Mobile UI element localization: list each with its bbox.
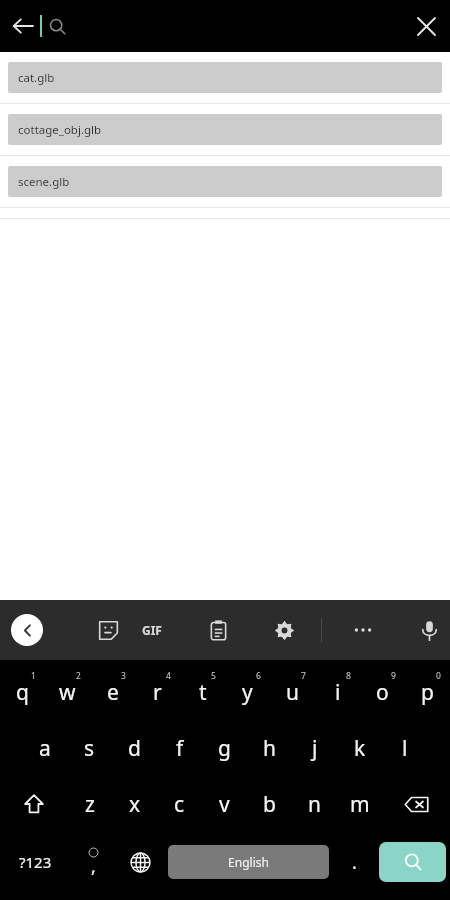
staticText: x bbox=[129, 790, 141, 819]
button[interactable]: scene.glb bbox=[0, 166, 450, 218]
button[interactable]: l bbox=[382, 720, 427, 776]
staticText: z bbox=[85, 790, 95, 819]
staticText: scene.glb bbox=[18, 174, 70, 190]
staticText: d bbox=[128, 734, 141, 763]
button[interactable]: n bbox=[292, 776, 337, 832]
button[interactable]: Back bbox=[11, 614, 43, 646]
staticText: p bbox=[421, 678, 434, 707]
staticText: 3 bbox=[121, 670, 126, 682]
button[interactable]: b bbox=[247, 776, 292, 832]
button[interactable]: i bbox=[315, 664, 360, 720]
button[interactable]: Back bbox=[0, 3, 46, 49]
button[interactable]: GIF bbox=[130, 608, 174, 652]
button[interactable]: cottage_obj.glb bbox=[0, 114, 450, 166]
staticText: e bbox=[107, 678, 119, 707]
staticText: . bbox=[352, 850, 357, 875]
button[interactable]: p bbox=[405, 664, 450, 720]
staticText: 4 bbox=[166, 670, 171, 682]
staticText: 7 bbox=[301, 670, 306, 682]
staticText: English bbox=[228, 854, 269, 870]
button[interactable]: , bbox=[70, 832, 117, 892]
staticText: b bbox=[263, 790, 276, 819]
button[interactable]: Voice input bbox=[407, 608, 450, 652]
button[interactable]: Stickers bbox=[86, 608, 130, 652]
button[interactable]: x bbox=[112, 776, 157, 832]
button[interactable]: z bbox=[67, 776, 112, 832]
staticText: , bbox=[91, 854, 96, 879]
staticText: j bbox=[312, 734, 318, 763]
button[interactable]: h bbox=[247, 720, 292, 776]
button[interactable]: s bbox=[67, 720, 112, 776]
button[interactable]: j bbox=[292, 720, 337, 776]
button[interactable]: u bbox=[270, 664, 315, 720]
staticText: l bbox=[402, 734, 408, 763]
staticText: y bbox=[242, 678, 253, 707]
button[interactable]: English bbox=[168, 845, 329, 879]
staticText: 8 bbox=[346, 670, 351, 682]
button[interactable]: cat.glb bbox=[0, 62, 450, 114]
button[interactable]: q bbox=[0, 664, 45, 720]
staticText: cat.glb bbox=[18, 70, 55, 86]
button[interactable] bbox=[40, 0, 340, 52]
button[interactable]: Search bbox=[379, 842, 446, 882]
button[interactable]: g bbox=[202, 720, 247, 776]
button[interactable]: Close bbox=[402, 2, 450, 50]
staticText: 5 bbox=[211, 670, 216, 682]
button[interactable]: Settings bbox=[262, 608, 306, 652]
button[interactable]: . bbox=[333, 832, 375, 892]
button[interactable]: t bbox=[180, 664, 225, 720]
staticText: i bbox=[335, 678, 341, 707]
staticText: 2 bbox=[76, 670, 81, 682]
button[interactable]: More options bbox=[341, 608, 385, 652]
staticText: u bbox=[286, 678, 299, 707]
button[interactable]: a bbox=[22, 720, 67, 776]
button[interactable]: e bbox=[90, 664, 135, 720]
button[interactable]: c bbox=[157, 776, 202, 832]
staticText: 1 bbox=[31, 670, 36, 682]
button[interactable]: w bbox=[45, 664, 90, 720]
staticText: g bbox=[218, 734, 231, 763]
staticText: v bbox=[219, 790, 230, 819]
staticText: t bbox=[199, 678, 207, 707]
staticText: 0 bbox=[436, 670, 441, 682]
staticText: c bbox=[174, 790, 185, 819]
button[interactable]: o bbox=[360, 664, 405, 720]
button[interactable]: k bbox=[337, 720, 382, 776]
staticText: f bbox=[176, 734, 184, 763]
button[interactable]: f bbox=[157, 720, 202, 776]
button[interactable]: ?123 bbox=[0, 832, 70, 892]
button[interactable]: y bbox=[225, 664, 270, 720]
staticText: o bbox=[376, 678, 389, 707]
button[interactable]: m bbox=[337, 776, 382, 832]
staticText: q bbox=[16, 678, 29, 707]
staticText: 6 bbox=[256, 670, 261, 682]
staticText: cottage_obj.glb bbox=[18, 122, 102, 138]
staticText: ?123 bbox=[19, 852, 52, 872]
staticText: 9 bbox=[391, 670, 396, 682]
staticText: r bbox=[153, 678, 162, 707]
staticText: GIF bbox=[142, 622, 162, 638]
button[interactable]: r bbox=[135, 664, 180, 720]
button[interactable]: Clipboard bbox=[196, 608, 240, 652]
staticText: k bbox=[354, 734, 366, 763]
button[interactable]: Shift bbox=[0, 776, 67, 832]
button[interactable]: d bbox=[112, 720, 157, 776]
staticText: w bbox=[59, 678, 76, 707]
button[interactable]: Change language bbox=[117, 832, 164, 892]
staticText: h bbox=[263, 734, 276, 763]
staticText: a bbox=[39, 734, 51, 763]
button[interactable]: v bbox=[202, 776, 247, 832]
staticText: m bbox=[350, 790, 370, 819]
staticText: s bbox=[84, 734, 95, 763]
button[interactable]: Backspace bbox=[382, 776, 450, 832]
staticText: n bbox=[308, 790, 321, 819]
